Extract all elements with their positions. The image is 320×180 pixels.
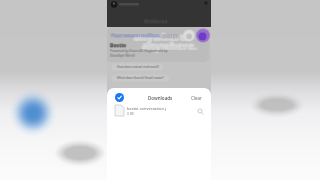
staticText: Goodbye World	[110, 52, 135, 57]
staticText: anywhere.	[141, 39, 196, 53]
staticText: anywhere.	[141, 39, 196, 53]
staticText: What does Scan & Email mean?	[117, 76, 164, 80]
staticText: Your secure mailbox,	[111, 32, 161, 39]
staticText: How does virtual mail work?	[118, 65, 160, 69]
staticText: Your secure mailbox,	[110, 32, 160, 39]
staticText: Powered by Zoom AI Engineered by	[110, 48, 168, 53]
staticText: What does Scan & Email mean?	[117, 76, 164, 80]
staticText: Goodbye World	[110, 53, 135, 58]
staticText: Your secure mailbox,	[112, 33, 162, 40]
staticText: oom	[163, 30, 180, 40]
staticText: Goodbye World	[109, 53, 134, 58]
button[interactable]: Downloads	[148, 95, 173, 101]
staticText: anywhere.	[143, 39, 198, 53]
button[interactable]: Search	[195, 106, 205, 116]
staticText: Bestie	[111, 41, 128, 48]
staticText: Powered by Zoom AI Engineered by	[110, 48, 168, 53]
staticText: Mailboxe	[145, 17, 169, 24]
staticText: anywhere.	[143, 39, 198, 53]
staticText: How does virtual mail work?	[117, 65, 159, 69]
staticText: 0 KB	[127, 112, 134, 116]
staticText: anywhere.	[143, 38, 198, 52]
staticText: How does virtual mail work?	[117, 65, 159, 69]
staticText: Clear	[191, 95, 202, 101]
button[interactable]: Select all	[115, 93, 124, 102]
staticText: Mailboxe	[144, 17, 168, 24]
staticText: oom	[161, 30, 178, 40]
staticText: Powered by Zoom AI Engineered by	[110, 48, 168, 53]
staticText: bestie-conversation.j	[127, 106, 167, 111]
staticText: Bestie	[110, 42, 127, 49]
staticText: Powered by Zoom AI Engineered by	[109, 48, 167, 53]
staticText: Powered by Zoom AI Engineered by	[110, 48, 168, 53]
staticText: oom	[161, 31, 178, 41]
staticText: What does Scan & Email mean?	[117, 76, 164, 80]
staticText: anywhere.	[141, 38, 196, 52]
staticText: Your secure mailbox,	[112, 32, 162, 39]
staticText: Mailboxe	[144, 18, 168, 25]
staticText: anywhere.	[142, 39, 197, 53]
staticText: anywhere.	[133, 30, 188, 44]
staticText: Goodbye World	[111, 53, 136, 58]
staticText: oom	[162, 30, 179, 40]
staticText: oom	[163, 31, 180, 41]
staticText: Goodbye World	[110, 53, 135, 58]
staticText: anywhere.	[133, 30, 188, 44]
staticText: anywhere.	[133, 29, 188, 43]
staticText: anywhere.	[134, 30, 189, 44]
staticText: Mailboxe	[144, 17, 168, 24]
staticText: anywhere.	[135, 30, 190, 44]
staticText: What does Scan & Email mean?	[118, 76, 165, 80]
staticText: Bestie	[110, 41, 127, 48]
staticText: Bestie	[109, 41, 126, 48]
staticText: anywhere.	[135, 29, 190, 43]
button[interactable]: bestie-conversation.j	[115, 104, 205, 117]
staticText: How does virtual mail work?	[117, 65, 159, 69]
staticText: Bestie	[110, 41, 127, 48]
staticText: Your secure mailbox,	[110, 33, 160, 40]
staticText: oom	[163, 30, 180, 40]
staticText: oom	[161, 30, 178, 40]
staticText: Powered by Zoom AI Engineered by	[111, 48, 169, 53]
staticText: What does Scan & Email mean?	[117, 76, 164, 80]
staticText: Mailboxe	[144, 18, 168, 25]
staticText: Bestie	[110, 42, 127, 49]
staticText: How does virtual mail work?	[117, 65, 159, 69]
staticText: anywhere.	[135, 30, 190, 44]
staticText: Powered by Zoom AI Engineered by	[110, 48, 168, 53]
staticText: Your secure mailbox,	[112, 32, 162, 39]
staticText: How does virtual mail work?	[117, 65, 159, 69]
button[interactable]: Clear	[191, 95, 202, 101]
staticText: What does Scan & Email mean?	[117, 76, 164, 80]
staticText: Bestie	[110, 41, 127, 48]
staticText: Goodbye World	[110, 53, 135, 58]
staticText: Mailboxe	[143, 17, 167, 24]
staticText: Mailboxe	[144, 17, 168, 24]
staticText: Your secure mailbox,	[110, 32, 160, 39]
staticText: Goodbye World	[110, 52, 135, 57]
staticText: How does virtual mail work?	[116, 65, 158, 69]
staticText: What does Scan & Email mean?	[116, 76, 163, 80]
